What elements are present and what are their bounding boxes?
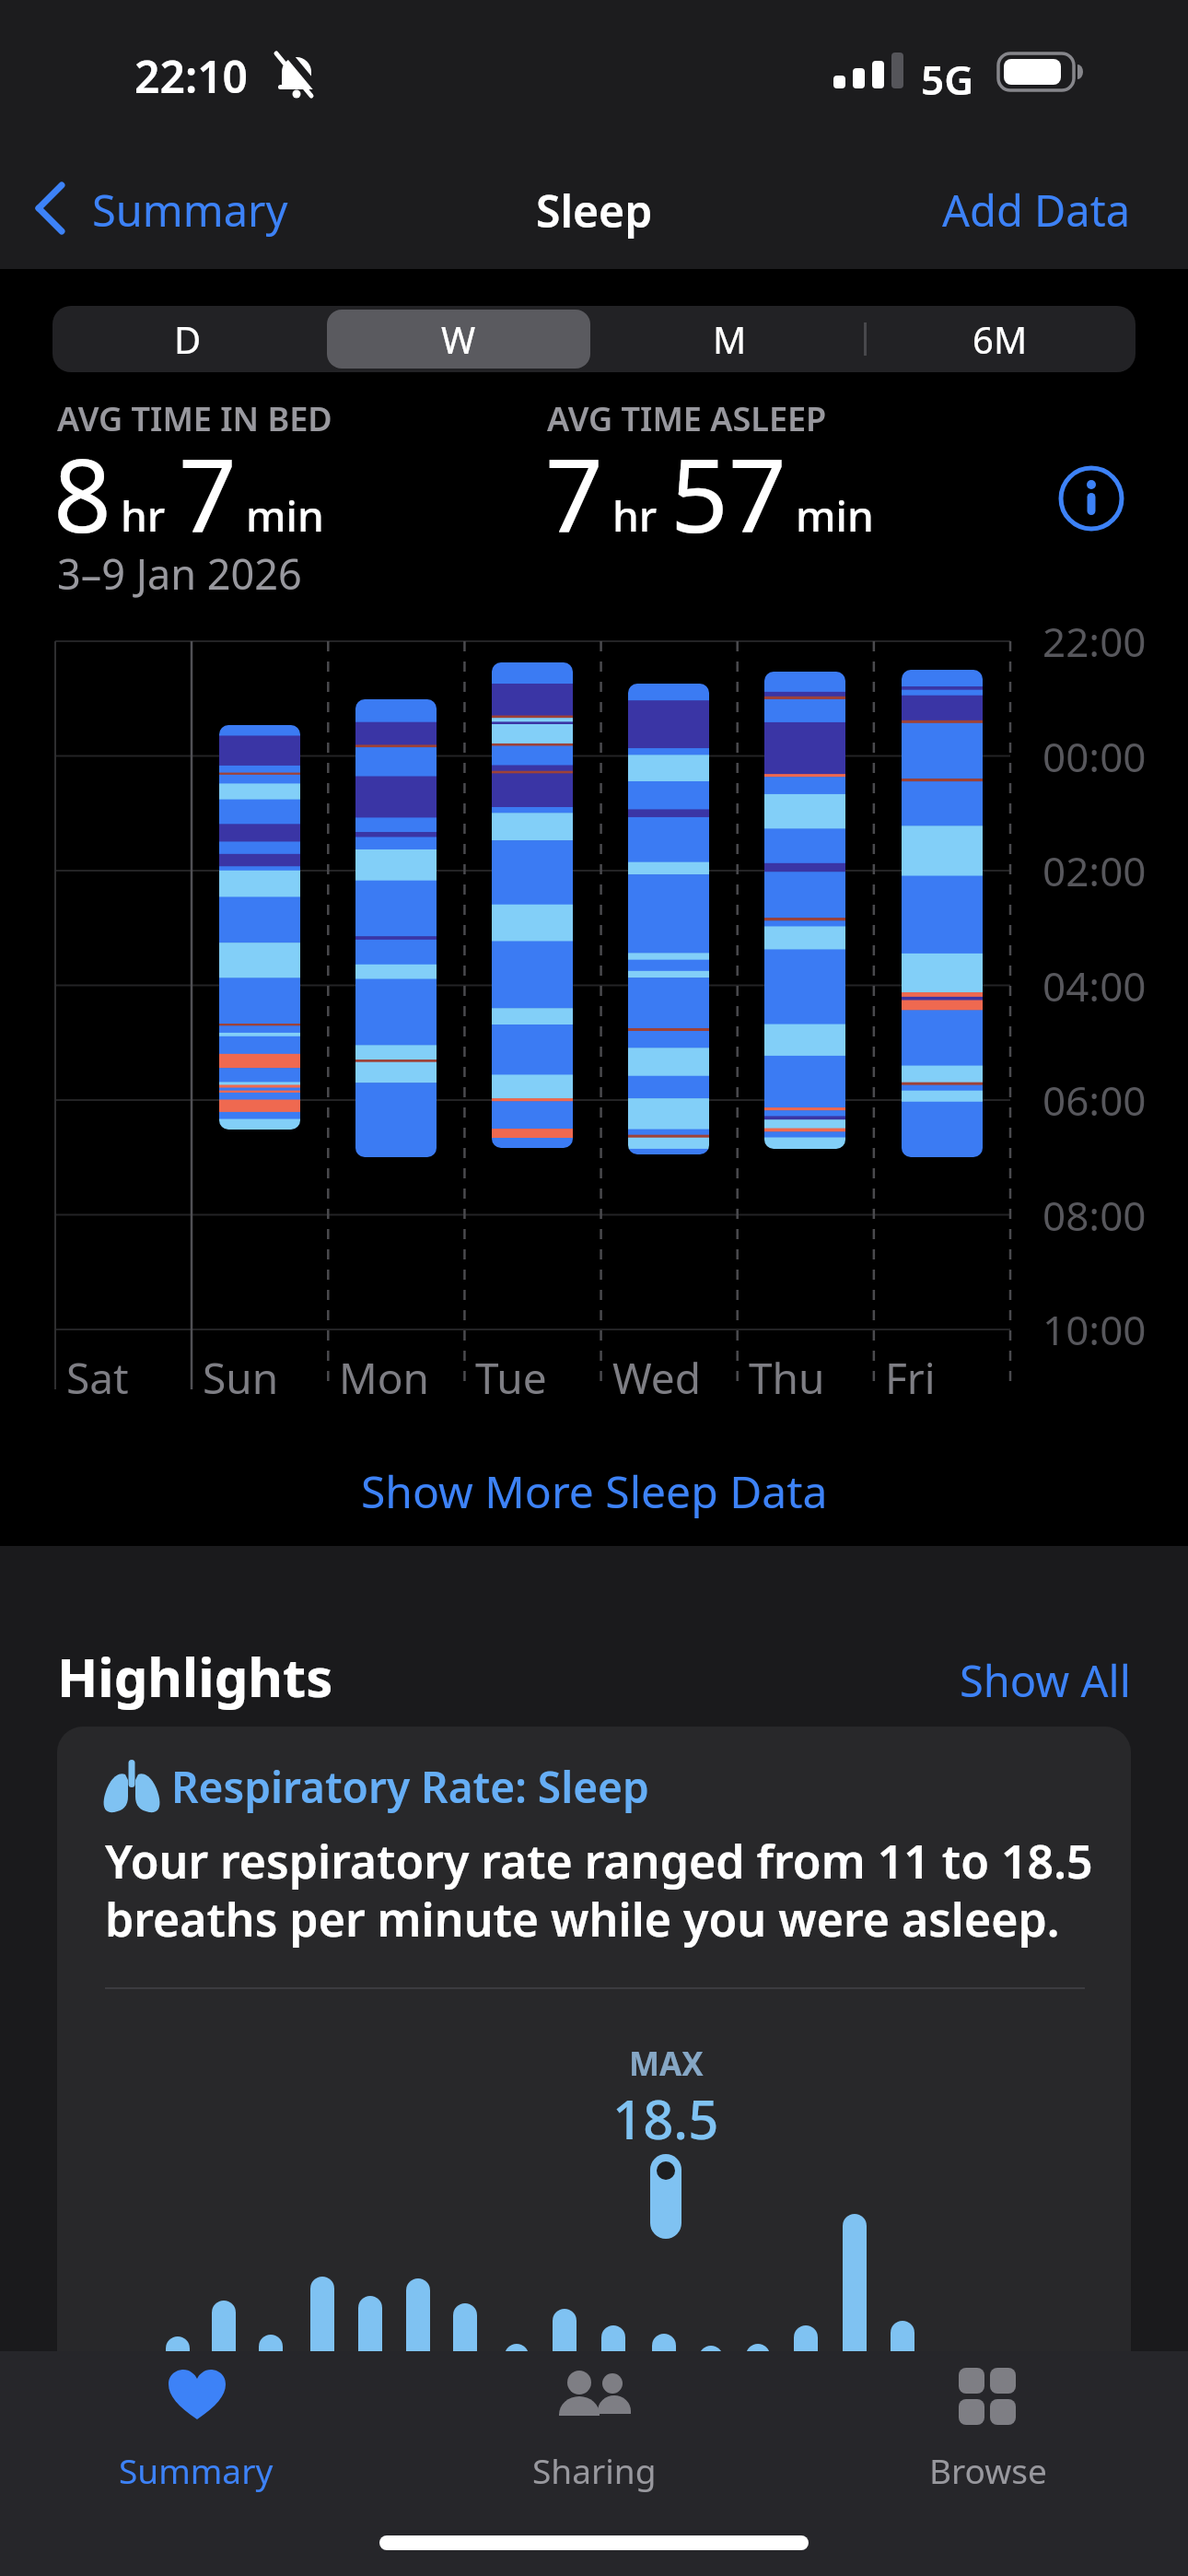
staticText: 7 — [179, 424, 237, 562]
staticText: M — [713, 314, 747, 364]
button[interactable]: M — [594, 306, 865, 372]
staticText: Mon — [339, 1349, 429, 1407]
staticText: Summary — [92, 181, 288, 240]
staticText: min — [246, 486, 324, 544]
staticText: D — [174, 314, 202, 364]
staticText: 57 — [670, 424, 786, 562]
staticText: Your respiratory rate ranged from 11 to … — [105, 1830, 1093, 1950]
staticText: 06:00 — [1042, 1072, 1147, 1128]
button[interactable]: Sharing — [474, 2359, 714, 2506]
staticText: Browse — [929, 2447, 1047, 2493]
staticText: Tue — [475, 1349, 547, 1407]
button[interactable]: Add Data — [942, 181, 1131, 240]
staticText: 04:00 — [1042, 958, 1147, 1013]
button[interactable]: Browse — [868, 2359, 1108, 2506]
staticText: Sleep — [536, 181, 653, 240]
button[interactable]: Respiratory Rate: Sleep — [57, 1727, 1131, 2576]
button[interactable] — [1055, 463, 1127, 534]
staticText: Respiratory Rate: Sleep — [171, 1758, 649, 1816]
staticText: Wed — [612, 1349, 702, 1407]
staticText: Summary — [119, 2447, 274, 2493]
staticText: 22:10 — [134, 46, 249, 106]
staticText: AVG TIME ASLEEP — [547, 396, 827, 441]
staticText: W — [441, 314, 476, 364]
staticText: Fri — [885, 1349, 936, 1407]
staticText: MAX — [629, 2042, 704, 2082]
staticText: 02:00 — [1042, 843, 1147, 898]
button[interactable]: Show More Sleep Data — [361, 1461, 828, 1521]
staticText: 6M — [973, 314, 1028, 364]
button[interactable]: 6M — [865, 306, 1136, 372]
staticText: 5G — [921, 52, 974, 107]
staticText: 22:00 — [1042, 614, 1147, 669]
staticText: Sun — [203, 1349, 279, 1407]
staticText: 18.5 — [612, 2082, 719, 2141]
staticText: 10:00 — [1042, 1302, 1147, 1357]
staticText: Sharing — [532, 2447, 657, 2493]
staticText: hr — [612, 486, 658, 544]
staticText: Sat — [66, 1349, 129, 1407]
button[interactable]: Show All — [960, 1651, 1131, 1710]
staticText: 8 — [53, 424, 111, 562]
button[interactable]: W — [323, 306, 594, 372]
button[interactable]: Summary — [33, 173, 309, 247]
staticText: min — [796, 486, 874, 544]
staticText: Thu — [749, 1349, 825, 1407]
staticText: hr — [121, 486, 166, 544]
staticText: Highlights — [57, 1640, 333, 1713]
staticText: 7 — [545, 424, 603, 562]
staticText: 3–9 Jan 2026 — [57, 545, 302, 602]
staticText: 00:00 — [1042, 729, 1147, 784]
staticText: 08:00 — [1042, 1188, 1147, 1243]
staticText: AVG TIME IN BED — [57, 396, 332, 441]
button[interactable]: Summary — [76, 2359, 316, 2506]
button[interactable]: D — [52, 306, 323, 372]
